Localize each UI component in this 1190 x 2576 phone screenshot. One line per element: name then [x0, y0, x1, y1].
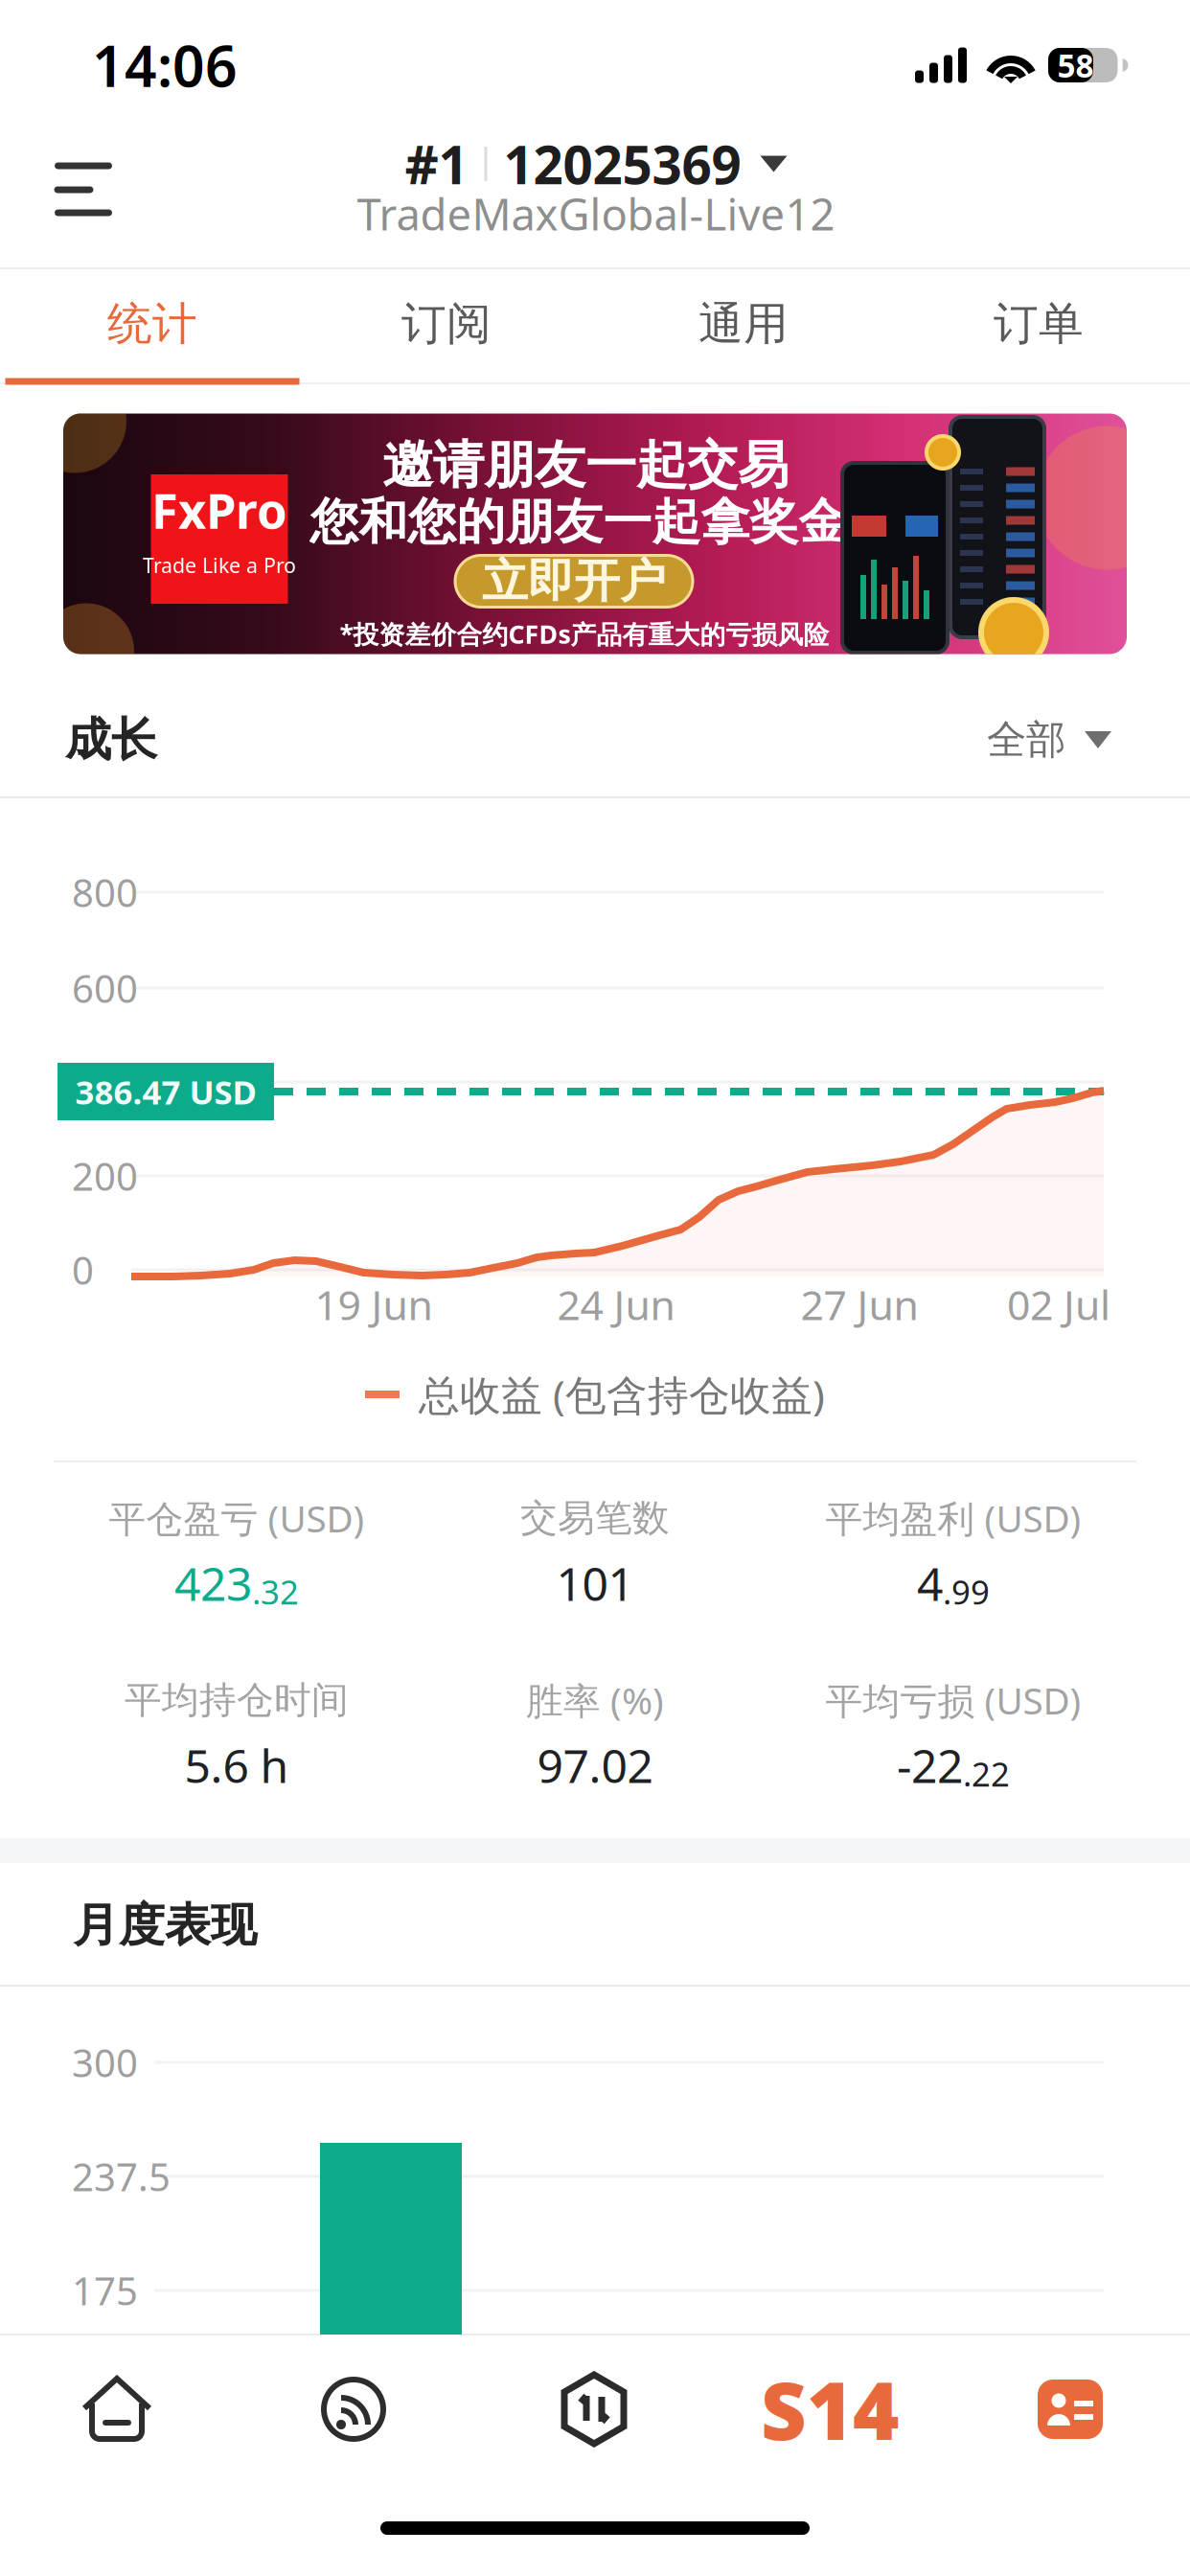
staticText: 平均持仓时间: [125, 1677, 349, 1723]
staticText: 成长: [65, 712, 157, 768]
staticText: 订单: [994, 296, 1084, 351]
staticText: .99: [943, 1570, 990, 1614]
staticText: 97.02: [537, 1735, 653, 1796]
staticText: 总收益 (包含持仓收益): [419, 1367, 825, 1422]
staticText: 58: [1057, 44, 1094, 86]
button[interactable]: 订阅: [0, 0, 1190, 384]
staticText: 02 Jul: [1007, 1277, 1110, 1332]
staticText: 交易笔数: [520, 1495, 670, 1541]
staticText: .22: [963, 1752, 1010, 1796]
staticText: 邀请朋友一起交易: [382, 434, 789, 497]
staticText: 您和您的朋友一起拿奖金!: [310, 488, 861, 552]
staticText: 通用: [698, 296, 789, 351]
staticText: 386.47 USD: [75, 1069, 256, 1114]
button[interactable]: #1: [0, 0, 1190, 268]
staticText: S14: [761, 2357, 899, 2462]
button[interactable]: Copy trading: [0, 0, 1190, 2492]
staticText: 300: [72, 2037, 138, 2088]
staticText: 175: [72, 2265, 138, 2316]
staticText: 101: [556, 1553, 634, 1614]
staticText: 平仓盈亏 (USD): [109, 1493, 365, 1543]
staticText: 平均亏损 (USD): [825, 1675, 1081, 1725]
button[interactable]: 全部: [0, 0, 1190, 797]
button[interactable]: FxPro: [0, 0, 1190, 671]
button[interactable]: 订单: [0, 0, 1190, 384]
staticText: TradeMaxGlobal-Live12: [357, 185, 835, 243]
staticText: 19 Jun: [315, 1277, 433, 1332]
staticText: 12025369: [503, 129, 741, 199]
button[interactable]: Profile: [0, 0, 1190, 2492]
staticText: FxPro: [151, 478, 287, 542]
staticText: -22: [897, 1735, 963, 1796]
button[interactable]: Menu: [0, 0, 1190, 268]
button[interactable]: 统计: [0, 0, 1190, 384]
staticText: 4: [917, 1553, 943, 1614]
staticText: 24 Jun: [557, 1277, 675, 1332]
staticText: 胜率 (%): [526, 1675, 664, 1725]
staticText: 全部: [987, 715, 1065, 764]
staticText: 27 Jun: [801, 1277, 918, 1332]
staticText: .32: [252, 1570, 299, 1614]
staticText: 237.5: [72, 2151, 171, 2202]
staticText: 立即开户: [482, 553, 666, 609]
button[interactable]: Trade: [0, 0, 1190, 2492]
staticText: 订阅: [401, 296, 492, 351]
staticText: #1: [405, 129, 468, 199]
staticText: *投资差价合约CFDs产品有重大的亏损风险: [340, 617, 829, 651]
staticText: 统计: [107, 296, 197, 351]
staticText: 平均盈利 (USD): [825, 1493, 1081, 1543]
button[interactable]: 通用: [0, 0, 1190, 384]
staticText: 月度表现: [73, 1897, 257, 1954]
staticText: 423: [174, 1553, 252, 1614]
button[interactable]: Signals: [0, 0, 1190, 2492]
staticText: 800: [72, 867, 138, 918]
staticText: 14:06: [92, 28, 238, 102]
staticText: 200: [72, 1150, 138, 1201]
staticText: 0: [72, 1244, 94, 1295]
button[interactable]: Home: [0, 0, 1190, 2492]
staticText: Trade Like a Pro: [143, 552, 296, 579]
staticText: 5.6 h: [184, 1735, 289, 1796]
staticText: 600: [72, 963, 138, 1013]
